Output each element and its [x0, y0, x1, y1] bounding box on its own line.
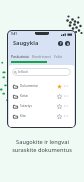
staticText: Ieškoti [18, 70, 29, 74]
staticText: Saugykla [13, 39, 39, 47]
button[interactable]: Ieškoti [12, 68, 71, 76]
staticText: Failai [54, 54, 63, 59]
button[interactable]: Sutartys [12, 101, 71, 111]
staticText: Paskutiniai [11, 54, 29, 59]
staticText: Kvitai [20, 94, 28, 98]
staticText: Bendrinami [32, 54, 51, 59]
staticText: Sutartys [20, 104, 32, 108]
button[interactable]: Account [65, 41, 70, 46]
staticText: 9:41 [11, 32, 17, 36]
button[interactable]: Kvitai [12, 91, 71, 101]
button[interactable]: Help [58, 41, 63, 46]
button[interactable]: Kita [12, 111, 71, 121]
staticText: suraskite dokumentus [12, 146, 72, 154]
staticText: ? [60, 42, 62, 46]
staticText: Kita [20, 114, 26, 118]
button[interactable]: Dokumentai [12, 81, 71, 91]
staticText: Dokumentai [20, 84, 38, 88]
staticText: Saugokite ir lengvai [16, 138, 69, 146]
